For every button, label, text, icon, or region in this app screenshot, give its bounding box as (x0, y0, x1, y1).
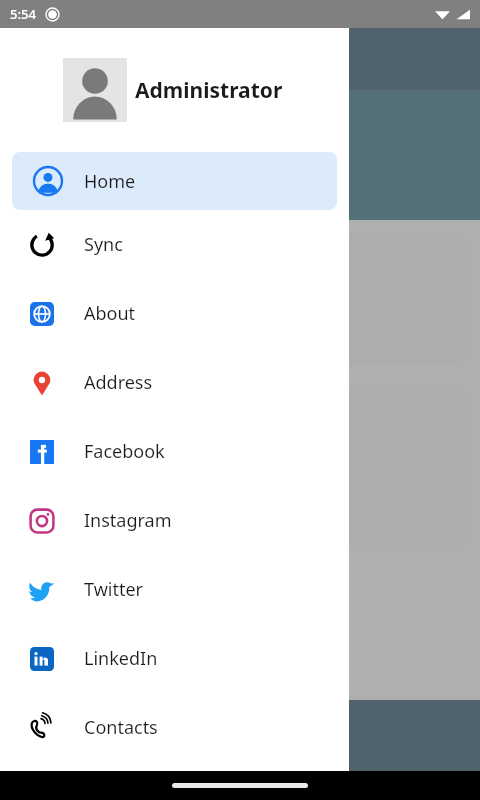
button[interactable]: Twitter (0, 555, 349, 624)
staticText: Address (84, 370, 153, 395)
staticText: About (84, 301, 136, 326)
staticText: Apply Leave (197, 769, 284, 789)
staticText: Twitter (84, 577, 144, 602)
button[interactable]: About (0, 279, 349, 348)
button[interactable]: View Notices (12, 390, 466, 545)
staticText: 5:54 (10, 5, 36, 23)
button[interactable]: LinkedIn (0, 624, 349, 693)
staticText: Home (84, 169, 136, 194)
staticText: Contacts (84, 715, 158, 740)
staticText: Sync (84, 232, 123, 257)
button[interactable]: Instagram (0, 486, 349, 555)
staticText: Administrator (135, 76, 283, 105)
button[interactable]: Assignment (12, 234, 466, 364)
button[interactable]: Contacts (0, 693, 349, 762)
button[interactable]: Facebook (0, 417, 349, 486)
button[interactable]: Home (12, 152, 337, 210)
button[interactable]: Address (0, 348, 349, 417)
staticText: LinkedIn (84, 646, 158, 671)
staticText: Instagram (84, 508, 172, 533)
button[interactable]: Sync (0, 210, 349, 279)
staticText: Facebook (84, 439, 165, 464)
